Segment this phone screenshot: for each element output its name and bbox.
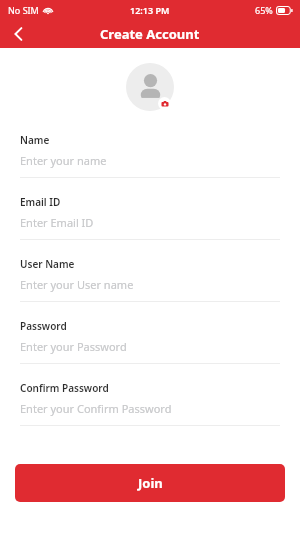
staticText: Create Account [100, 25, 200, 43]
button[interactable]: Back [0, 20, 36, 48]
staticText: Name [20, 133, 50, 147]
staticText: Email ID [20, 195, 61, 209]
button[interactable]: Change profile photo [117, 62, 183, 112]
staticText: 65% [255, 4, 273, 16]
staticText: Enter your Password [20, 339, 127, 354]
button[interactable]: Email ID [0, 195, 300, 257]
staticText: Join [138, 474, 163, 492]
staticText: Enter your name [20, 153, 107, 168]
staticText: Enter Email ID [20, 215, 94, 230]
staticText: Confirm Password [20, 381, 109, 395]
staticText: Password [20, 319, 67, 333]
staticText: Enter your Confirm Password [20, 401, 172, 416]
staticText: No SIM [8, 4, 39, 16]
button[interactable]: Join [15, 464, 285, 502]
button[interactable]: Password [0, 319, 300, 381]
button[interactable]: User Name [0, 257, 300, 319]
staticText: 12:13 PM [130, 4, 170, 16]
staticText: User Name [20, 257, 75, 271]
button[interactable]: Confirm Password [0, 381, 300, 443]
button[interactable]: Name [0, 133, 300, 195]
staticText: Enter your User name [20, 277, 134, 292]
